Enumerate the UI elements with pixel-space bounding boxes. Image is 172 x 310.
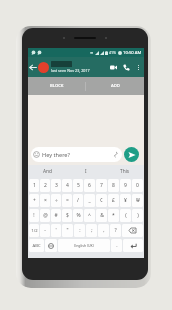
button[interactable]: × (40, 194, 50, 207)
button[interactable]: $ (62, 209, 72, 222)
button[interactable] (45, 239, 57, 252)
button[interactable]: ) (132, 209, 143, 222)
staticText: ≡ (90, 50, 94, 55)
staticText: 0 (136, 182, 139, 189)
button[interactable]: ^ (84, 209, 95, 222)
button[interactable]: . (111, 239, 122, 252)
button[interactable]: ABC (29, 239, 44, 252)
staticText: This (120, 168, 130, 175)
staticText: ABC (32, 243, 41, 249)
button[interactable]: ₩ (132, 194, 143, 207)
staticText: And (43, 168, 52, 175)
staticText: ? (114, 227, 117, 234)
button[interactable]: This (105, 165, 144, 178)
button[interactable]: £ (108, 194, 119, 207)
staticText: English (UK) (74, 243, 94, 248)
staticText: 8 (112, 182, 115, 189)
staticText: ! (33, 212, 35, 219)
staticText: . (116, 242, 118, 249)
button[interactable]: And (28, 165, 66, 178)
button[interactable]: ? (110, 224, 121, 237)
button[interactable]: @ (40, 209, 50, 222)
button[interactable]: Hey there? (33, 147, 119, 162)
button[interactable]: , (98, 224, 109, 237)
staticText: ; (91, 227, 93, 234)
button[interactable]: : (74, 224, 85, 237)
button[interactable]: = (62, 194, 72, 207)
staticText: 3 (55, 182, 58, 189)
button[interactable]: 6 (84, 179, 95, 192)
button[interactable]: ¢ (96, 194, 107, 207)
staticText: _ (88, 197, 91, 204)
staticText: , (103, 227, 105, 234)
staticText: % (76, 212, 81, 219)
staticText: I (85, 168, 87, 175)
staticText: $ (66, 212, 69, 219)
button[interactable]: ADD (86, 77, 144, 95)
staticText: 5 (77, 182, 80, 189)
button[interactable]: ' (51, 224, 61, 237)
staticText: ) (137, 212, 139, 219)
staticText: 10:50 AM (123, 50, 142, 56)
button[interactable]: _ (84, 194, 95, 207)
button[interactable]: ¥ (120, 194, 131, 207)
staticText: ₩ (136, 197, 140, 204)
button[interactable]: ( (120, 209, 131, 222)
staticText: 1 (33, 182, 36, 189)
staticText: ADD (111, 83, 120, 89)
button[interactable]: 0 (132, 179, 143, 192)
button[interactable]: I (66, 165, 105, 178)
button[interactable]: 1 (29, 179, 39, 192)
staticText: & (100, 212, 104, 219)
button[interactable]: % (73, 209, 83, 222)
staticText: 4 (66, 182, 69, 189)
staticText: £ (112, 197, 115, 204)
button[interactable]: More options (133, 57, 144, 77)
staticText: 2 (44, 182, 47, 189)
staticText: last seen Nov 23, 2017 (51, 68, 90, 73)
button[interactable]: 5 (73, 179, 83, 192)
staticText: ¥ (124, 197, 127, 204)
button[interactable]: 9 (120, 179, 131, 192)
staticText: ÷ (55, 197, 58, 204)
button[interactable]: " (62, 224, 73, 237)
button[interactable]: ! (29, 209, 39, 222)
staticText: ( (125, 212, 127, 219)
staticText: ^ (88, 212, 91, 219)
button[interactable]: - (40, 224, 50, 237)
button[interactable]: 4 (62, 179, 72, 192)
staticText: 6 (88, 182, 91, 189)
staticText: 1/2 (31, 228, 38, 234)
staticText: : (79, 227, 81, 234)
button[interactable]: + (29, 194, 39, 207)
staticText: 41% (109, 50, 117, 55)
button[interactable]: Video call (108, 62, 119, 73)
button[interactable]: ; (86, 224, 97, 237)
staticText: = (66, 197, 69, 204)
staticText: - (44, 227, 46, 234)
button[interactable]: * (108, 209, 119, 222)
staticText: ' (55, 227, 57, 234)
button[interactable] (122, 224, 143, 237)
button[interactable] (123, 239, 143, 252)
button[interactable]: BLOCK (28, 77, 85, 95)
button[interactable]: & (96, 209, 107, 222)
button[interactable]: English (UK) (58, 239, 110, 252)
staticText: BLOCK (50, 83, 64, 89)
staticText: @ (43, 212, 48, 219)
button[interactable]: ÷ (51, 194, 61, 207)
button[interactable]: # (51, 209, 61, 222)
button[interactable]: 3 (51, 179, 61, 192)
staticText: # (54, 212, 58, 219)
button[interactable]: Back (28, 57, 38, 77)
staticText: " (66, 227, 69, 234)
staticText: 7 (100, 182, 103, 189)
button[interactable]: Call (121, 62, 132, 73)
staticText: / (77, 197, 79, 204)
button[interactable]: 2 (40, 179, 50, 192)
button[interactable]: Send (124, 147, 139, 162)
button[interactable]: 8 (108, 179, 119, 192)
button[interactable]: / (73, 194, 83, 207)
button[interactable]: 7 (96, 179, 107, 192)
button[interactable]: 1/2 (29, 224, 39, 237)
